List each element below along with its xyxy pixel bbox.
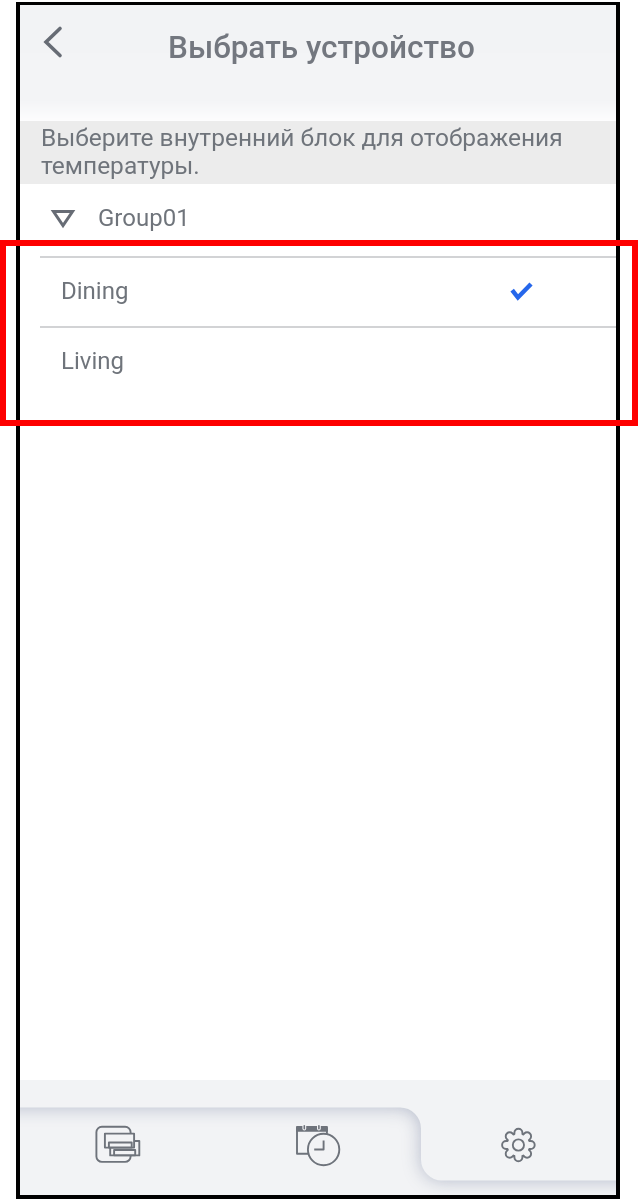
staticText: Выбрать устройство	[168, 29, 475, 66]
staticText: Living	[61, 347, 124, 375]
staticText: Group01	[98, 204, 190, 232]
button[interactable]: Back	[25, 14, 81, 70]
button[interactable]: Dining	[20, 256, 616, 326]
staticText: Dining	[61, 277, 129, 305]
button[interactable]: Schedule	[218, 1080, 417, 1195]
button[interactable]: Air conditioner units	[20, 1080, 218, 1195]
button[interactable]: Living	[20, 326, 616, 396]
staticText: Выберите внутренний блок для отображения…	[41, 123, 566, 180]
button[interactable]: Settings	[417, 1080, 616, 1195]
button[interactable]: Group01	[20, 184, 616, 256]
